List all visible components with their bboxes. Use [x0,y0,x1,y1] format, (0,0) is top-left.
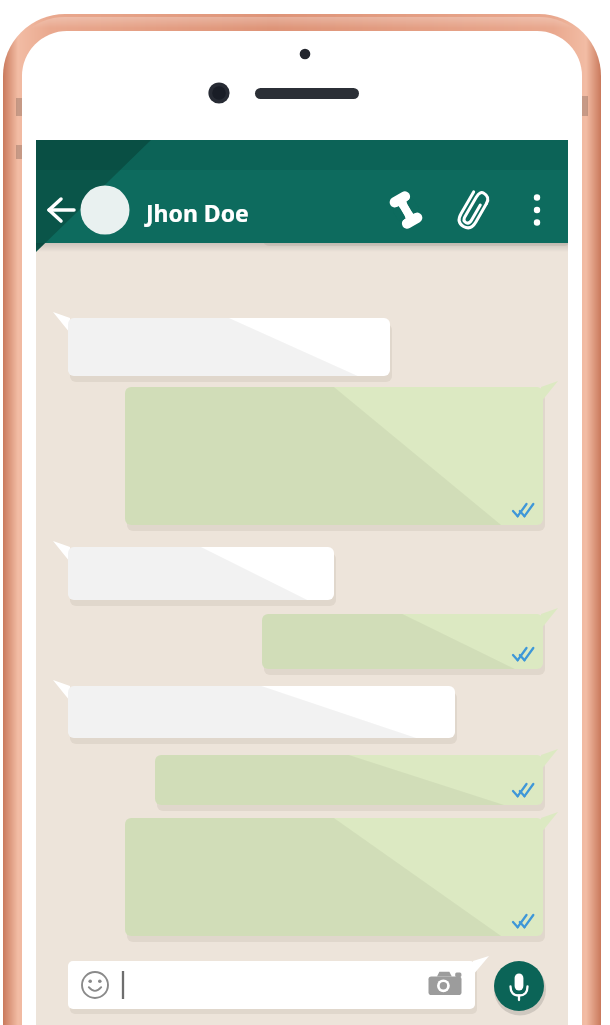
button[interactable]: Emoji [74,968,118,1004]
staticText: Jhon Doe [146,197,249,228]
button[interactable] [140,192,270,230]
button[interactable]: Contact photo [81,186,129,234]
button[interactable]: Camera [424,968,466,1004]
button[interactable]: Attach file [450,184,498,236]
button[interactable]: More options [518,186,558,234]
button[interactable]: Back [44,188,84,232]
button[interactable]: Message field [68,960,476,1010]
button[interactable]: Call [384,186,430,234]
button[interactable]: Voice message [494,961,545,1012]
